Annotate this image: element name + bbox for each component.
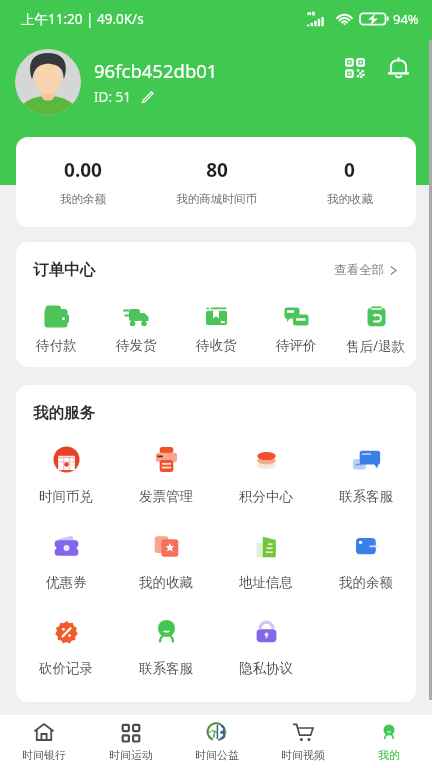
staticText: 联系客服 <box>339 488 393 505</box>
button[interactable]: 积分中心 <box>216 440 316 526</box>
staticText: 时间视频 <box>281 748 325 762</box>
button[interactable]: Profile picture <box>15 49 81 115</box>
staticText: 待发货 <box>116 337 157 354</box>
staticText: 地址信息 <box>239 574 293 591</box>
staticText: 砍价记录 <box>39 660 93 677</box>
button[interactable]: 砍价记录 <box>16 612 116 698</box>
staticText: 优惠券 <box>46 574 87 591</box>
button[interactable]: Notifications <box>381 51 415 85</box>
staticText: 时间币兑 <box>39 488 93 505</box>
button[interactable]: 联系客服 <box>116 612 216 698</box>
button[interactable]: 80 <box>150 137 283 227</box>
staticText: 待评价 <box>276 337 317 354</box>
staticText: 我的余额 <box>339 574 393 591</box>
staticText: 待收货 <box>196 337 237 354</box>
button[interactable]: 时间运动 <box>87 715 174 768</box>
button[interactable]: 我的余额 <box>316 526 416 612</box>
staticText: 时间公益 <box>195 748 239 762</box>
staticText: 我的 <box>378 748 400 762</box>
button[interactable]: 我的 <box>346 715 432 768</box>
staticText: 94% <box>393 10 419 28</box>
staticText: 我的收藏 <box>327 192 373 206</box>
button[interactable]: 时间币兑 <box>16 440 116 526</box>
staticText: 上午11:20 | 49.0K/s <box>21 10 144 28</box>
staticText: ID: 51 <box>94 88 132 106</box>
button[interactable]: 联系客服 <box>316 440 416 526</box>
button[interactable]: 时间公益 <box>174 715 260 768</box>
staticText: 售后/退款 <box>346 337 406 355</box>
staticText: 联系客服 <box>139 660 193 677</box>
staticText: 我的余额 <box>60 192 106 206</box>
button[interactable]: 待评价 <box>256 303 336 354</box>
button[interactable]: 待付款 <box>16 303 96 354</box>
button[interactable]: 0 <box>283 137 416 227</box>
button[interactable]: 0.00 <box>16 137 150 227</box>
staticText: 0.00 <box>64 157 102 183</box>
staticText: 我的服务 <box>33 403 95 423</box>
button[interactable]: 地址信息 <box>216 526 316 612</box>
button[interactable]: 优惠券 <box>16 526 116 612</box>
staticText: 待付款 <box>36 337 77 354</box>
button[interactable]: 时间视频 <box>260 715 346 768</box>
button[interactable]: 待收货 <box>176 303 256 354</box>
button[interactable]: Scan QR code <box>338 51 372 85</box>
button[interactable]: 发票管理 <box>116 440 216 526</box>
staticText: 0 <box>344 157 355 183</box>
staticText: 查看全部 <box>334 262 384 278</box>
staticText: 时间运动 <box>109 748 153 762</box>
button[interactable]: 隐私协议 <box>216 612 316 698</box>
staticText: 发票管理 <box>139 488 193 505</box>
staticText: 96fcb452db01 <box>94 58 218 83</box>
staticText: 时间银行 <box>22 748 66 762</box>
staticText: 积分中心 <box>239 488 293 505</box>
staticText: 订单中心 <box>33 260 95 280</box>
button[interactable]: 售后/退款 <box>336 303 416 355</box>
staticText: 80 <box>206 157 228 183</box>
staticText: 我的商城时间币 <box>176 192 257 206</box>
staticText: 隐私协议 <box>239 660 293 677</box>
button[interactable]: 我的收藏 <box>116 526 216 612</box>
button[interactable]: 查看全部 <box>330 258 402 282</box>
staticText: 我的收藏 <box>139 574 193 591</box>
button[interactable]: 时间银行 <box>0 715 87 768</box>
button[interactable]: 待发货 <box>96 303 176 354</box>
